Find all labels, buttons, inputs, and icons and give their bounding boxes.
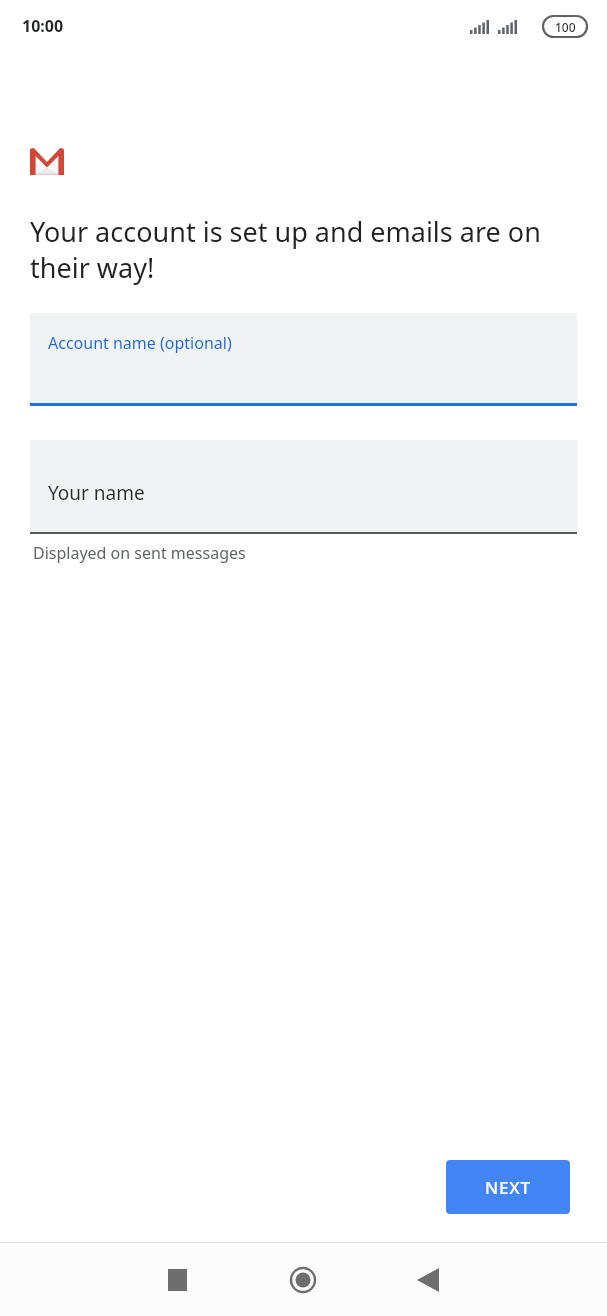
button[interactable]: NEXT — [446, 1160, 570, 1214]
staticText: Account name (optional) — [48, 332, 232, 354]
staticText: NEXT — [485, 1176, 531, 1199]
staticText: Your name — [48, 480, 145, 506]
button[interactable]: Back — [403, 1255, 453, 1305]
staticText: Displayed on sent messages — [33, 542, 246, 564]
staticText: 100 — [555, 19, 576, 35]
button[interactable]: Recent apps — [152, 1255, 202, 1305]
button[interactable]: Account name (optional) — [30, 313, 577, 406]
staticText: Your account is set up and emails are on… — [30, 213, 577, 286]
button[interactable]: Your name — [30, 440, 577, 534]
staticText: 10:00 — [22, 15, 64, 37]
button[interactable]: Home — [278, 1255, 328, 1305]
